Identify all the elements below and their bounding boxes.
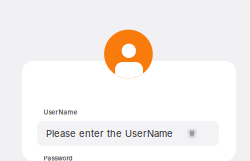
button[interactable]: Autofill user name [187,128,197,138]
button[interactable]: Profile photo [104,30,153,78]
staticText: Please enter the UserName [46,128,173,139]
staticText: Password [43,154,72,161]
staticText: UserName [43,108,77,116]
button[interactable]: Please enter the UserName [37,121,219,146]
